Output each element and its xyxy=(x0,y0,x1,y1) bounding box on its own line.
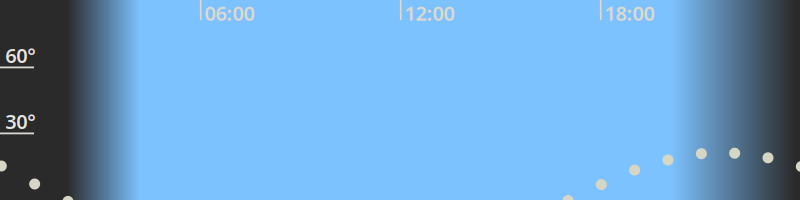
staticText: 06:00 xyxy=(204,0,254,26)
staticText: 12:00 xyxy=(404,0,454,26)
staticText: 30° xyxy=(5,108,36,134)
staticText: 18:00 xyxy=(604,0,654,26)
staticText: 60° xyxy=(5,42,36,68)
